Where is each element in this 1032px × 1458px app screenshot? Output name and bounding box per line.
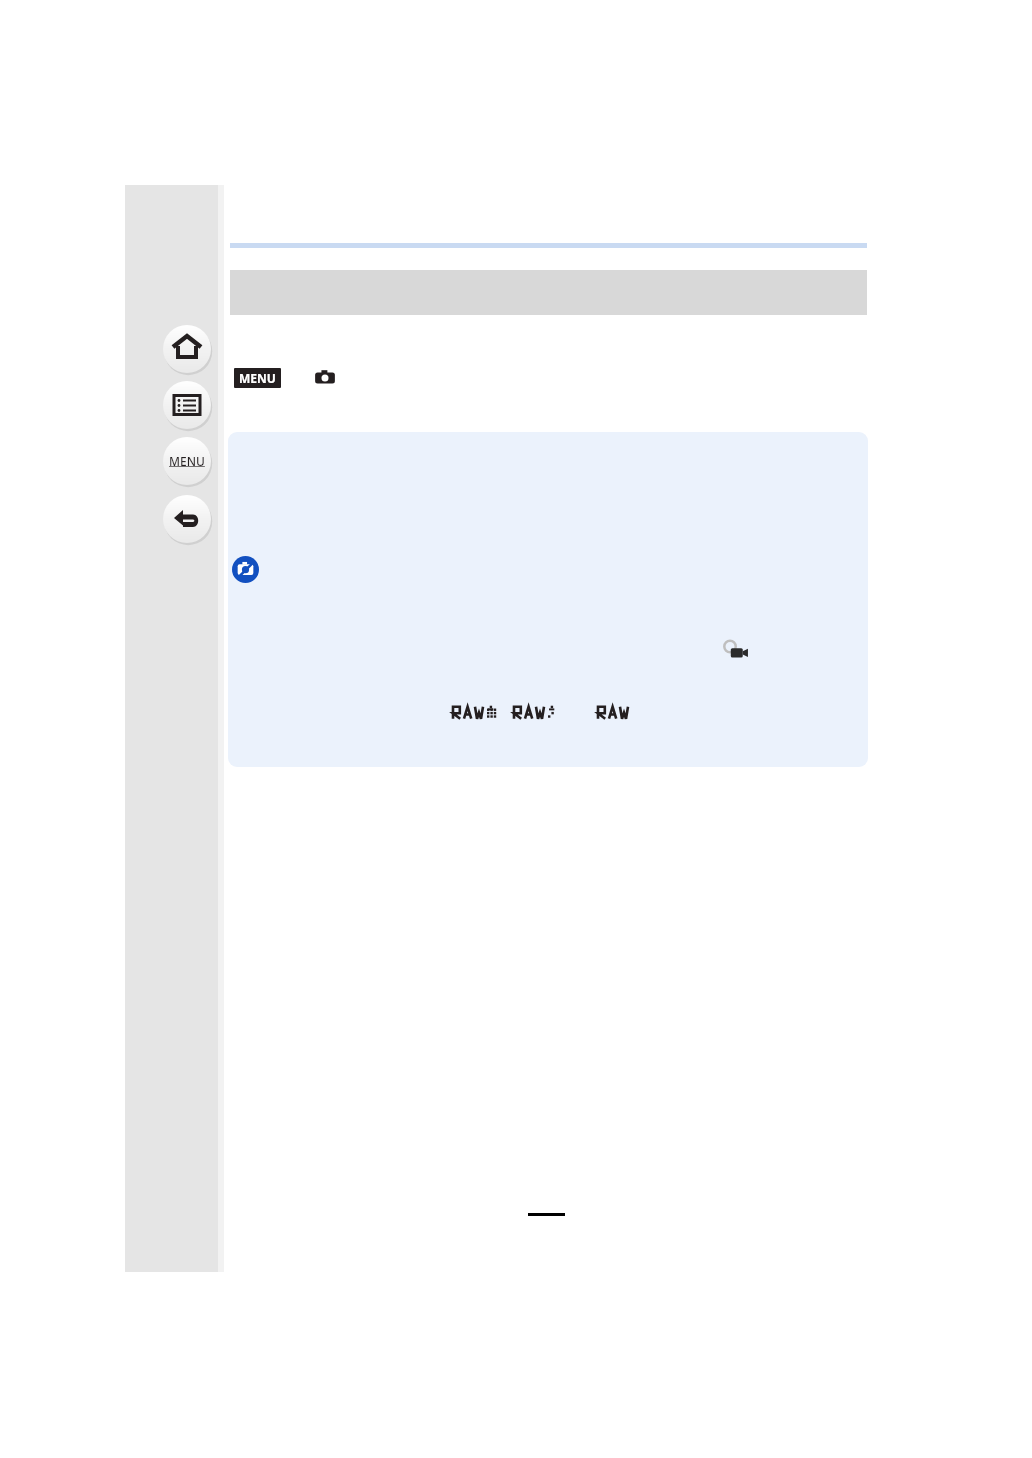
staticText: MENU bbox=[239, 370, 276, 386]
other: Not available bbox=[232, 556, 259, 583]
other: Recording mode bbox=[312, 367, 338, 387]
button[interactable]: Home bbox=[163, 325, 211, 373]
button[interactable]: Back bbox=[163, 495, 211, 543]
button[interactable]: MENU bbox=[234, 368, 281, 388]
staticText: MENU bbox=[169, 453, 205, 469]
button[interactable]: Contents bbox=[163, 381, 211, 429]
button[interactable]: Menu bbox=[163, 437, 211, 485]
